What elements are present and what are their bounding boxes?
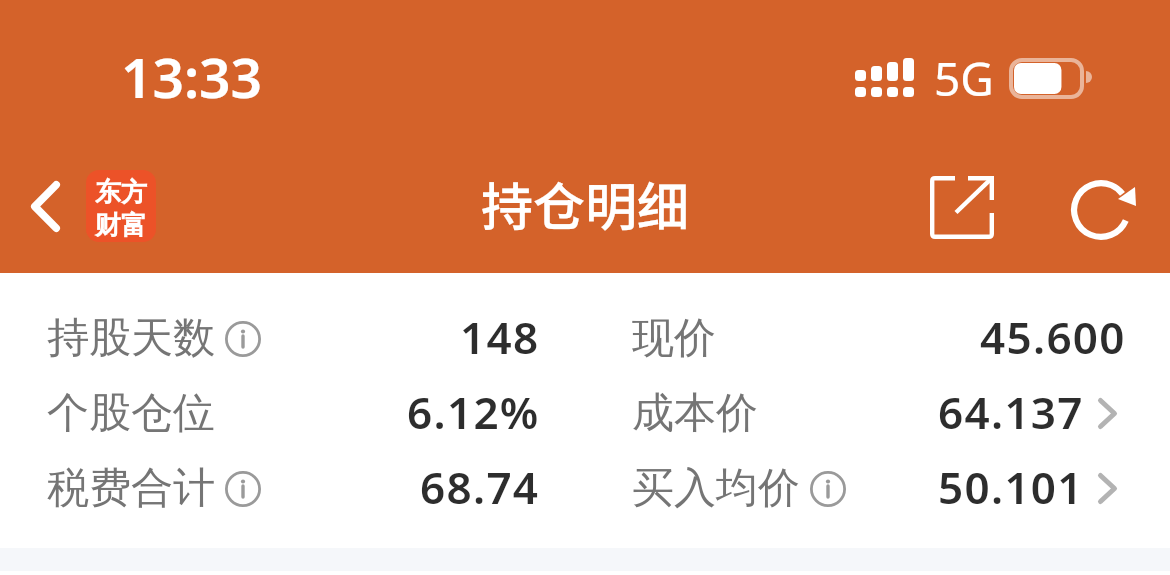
staticText: 64.137 — [938, 382, 1084, 442]
button[interactable]: 现价 — [585, 301, 1170, 376]
staticText: 6.12% — [407, 382, 540, 442]
button[interactable]: 买入均价 — [585, 451, 1170, 526]
staticText: 148 — [460, 307, 540, 367]
staticText: 买入均价 — [632, 462, 800, 515]
staticText: 税费合计 — [47, 462, 215, 515]
staticText: 东方 — [95, 176, 147, 209]
staticText: 5G — [934, 47, 994, 110]
button[interactable]: 税费合计 — [0, 451, 585, 526]
staticText: 成本价 — [632, 387, 758, 440]
button[interactable]: 返回 — [8, 169, 82, 243]
staticText: 50.101 — [938, 457, 1084, 517]
staticText: 持股天数 — [47, 312, 215, 365]
staticText: 13:33 — [121, 39, 263, 114]
button[interactable]: 东方 — [86, 170, 156, 242]
staticText: 个股仓位 — [47, 387, 215, 440]
staticText: 现价 — [632, 312, 716, 365]
staticText: 45.600 — [980, 307, 1126, 367]
button[interactable]: 持股天数 — [0, 301, 585, 376]
button[interactable]: 分享 — [925, 166, 1009, 250]
staticText: 持仓明细 — [481, 166, 690, 241]
button[interactable]: 成本价 — [585, 376, 1170, 451]
button[interactable]: 刷新 — [1059, 168, 1143, 252]
button[interactable]: 个股仓位 — [0, 376, 585, 451]
staticText: 财富 — [95, 209, 147, 242]
staticText: 68.74 — [420, 457, 540, 517]
